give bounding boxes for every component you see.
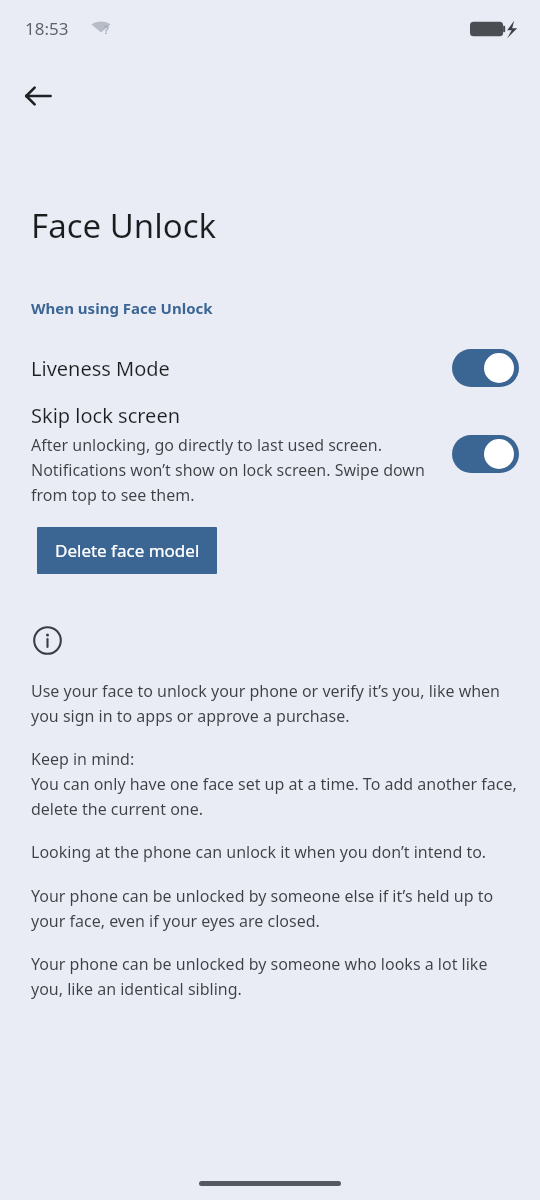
- button[interactable]: Delete face model: [37, 527, 217, 574]
- staticText: Keep in mind: You can only have one face…: [31, 748, 518, 819]
- staticText: ?: [104, 22, 109, 37]
- staticText: After unlocking, go directly to last use…: [31, 434, 438, 505]
- button[interactable]: Skip lock screen: [0, 402, 540, 505]
- button[interactable]: Liveness Mode: [0, 340, 540, 396]
- button[interactable]: Toggle, on: [452, 435, 519, 473]
- staticText: Skip lock screen: [31, 402, 181, 429]
- staticText: Your phone can be unlocked by someone el…: [31, 885, 518, 931]
- staticText: Your phone can be unlocked by someone wh…: [31, 953, 518, 999]
- button[interactable]: Back: [10, 68, 66, 124]
- staticText: Looking at the phone can unlock it when …: [31, 841, 487, 863]
- staticText: Use your face to unlock your phone or ve…: [31, 680, 518, 726]
- staticText: Delete face model: [55, 539, 200, 562]
- button[interactable]: Toggle, on: [452, 349, 519, 387]
- staticText: When using Face Unlock: [31, 298, 213, 318]
- staticText: Face Unlock: [31, 203, 217, 248]
- staticText: 18:53: [25, 17, 69, 40]
- staticText: Liveness Mode: [31, 355, 452, 382]
